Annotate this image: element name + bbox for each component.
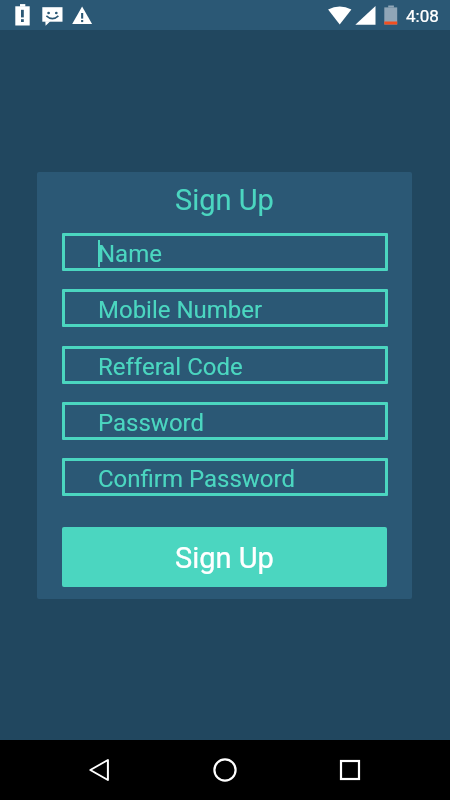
staticText: Confirm Password [98, 465, 296, 493]
staticText: 4:08 [406, 6, 439, 26]
staticText: Name [98, 240, 162, 268]
staticText: Mobile Number [98, 296, 263, 324]
button[interactable]: Confirm Password [62, 458, 388, 496]
button[interactable]: Refferal Code [62, 346, 388, 384]
button[interactable]: Name [62, 233, 388, 271]
staticText: Sign Up [175, 183, 274, 217]
staticText: Refferal Code [98, 353, 243, 381]
staticText: Password [98, 409, 205, 437]
button[interactable]: Password [62, 402, 388, 440]
button[interactable]: Sign Up [62, 527, 387, 587]
staticText: Sign Up [175, 541, 274, 575]
button[interactable]: Back [78, 748, 122, 792]
button[interactable]: Home [203, 748, 247, 792]
button[interactable]: Recent apps [328, 748, 372, 792]
button[interactable]: Mobile Number [62, 289, 388, 327]
